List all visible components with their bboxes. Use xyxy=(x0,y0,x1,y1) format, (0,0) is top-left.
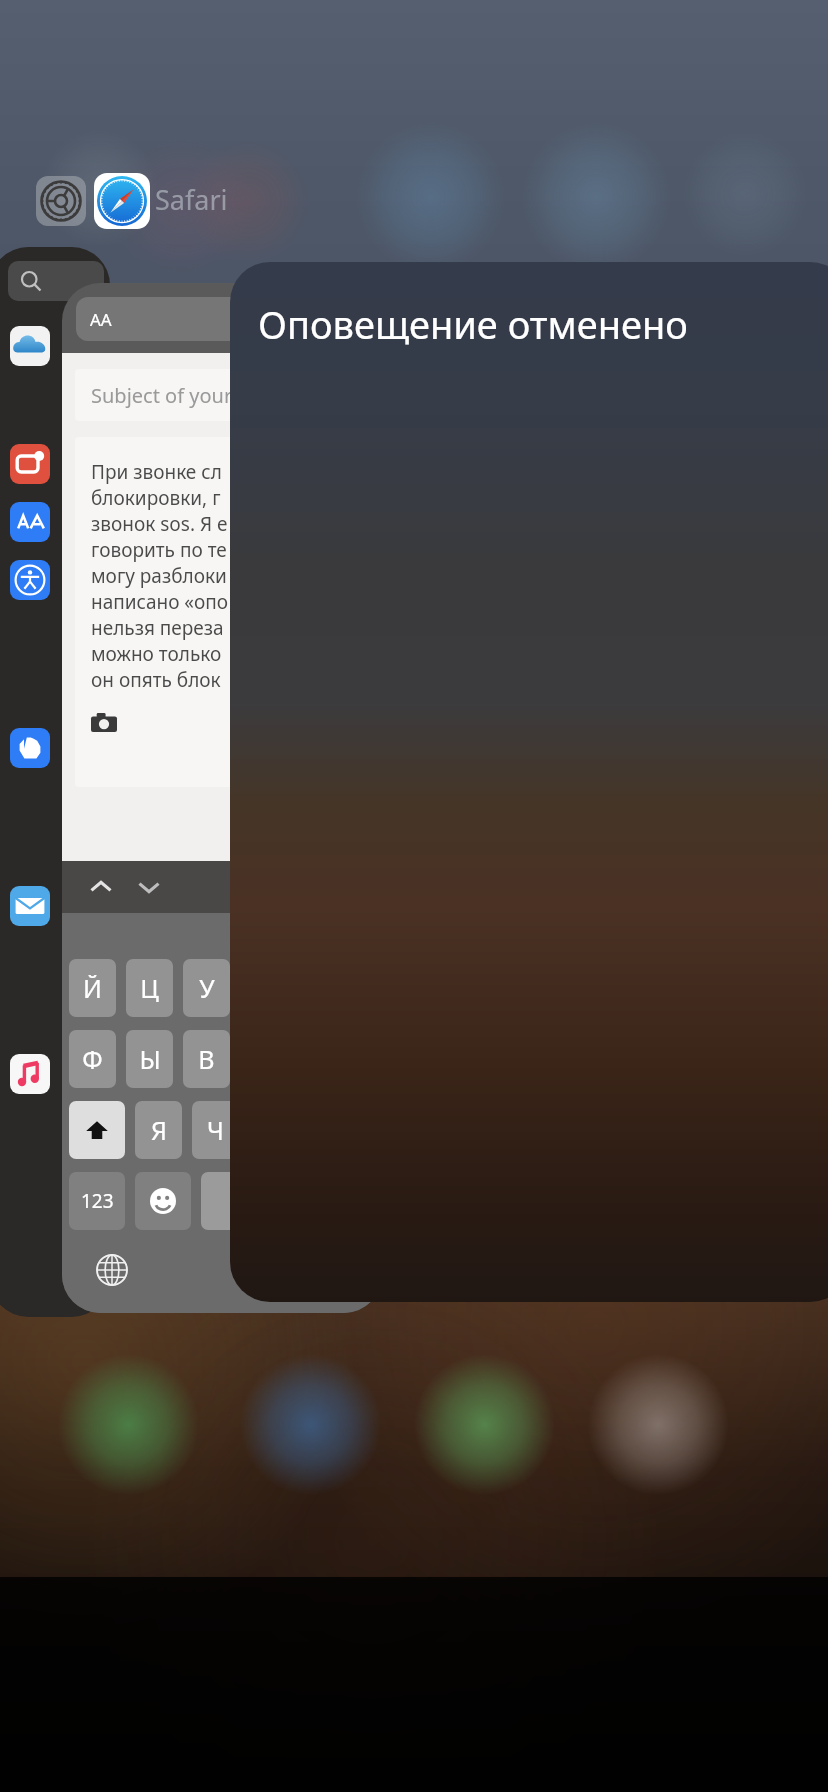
button[interactable] xyxy=(8,261,104,301)
button[interactable]: Emoji xyxy=(135,1172,191,1230)
staticText: Й xyxy=(83,971,102,1005)
button[interactable]: Safari xyxy=(94,173,150,229)
button[interactable]: Я xyxy=(135,1101,182,1159)
button[interactable]: Previous field xyxy=(84,870,118,904)
staticText: Safari xyxy=(155,181,228,218)
staticText: Ы xyxy=(139,1042,161,1076)
button[interactable] xyxy=(0,247,110,1317)
staticText: В xyxy=(198,1042,215,1076)
button[interactable] xyxy=(0,323,110,369)
staticText: При звонке сл xyxy=(91,459,222,485)
button[interactable]: AA xyxy=(62,283,382,1313)
staticText: блокировки, г xyxy=(91,485,221,511)
staticText: звонок sos. Я е xyxy=(91,511,228,537)
button[interactable]: Subject of your xyxy=(75,369,369,421)
button[interactable]: Й xyxy=(69,959,116,1017)
button[interactable] xyxy=(0,1051,110,1097)
staticText: Subject of your xyxy=(91,382,233,409)
staticText: написано «опо xyxy=(91,589,229,615)
button[interactable] xyxy=(0,725,110,771)
button[interactable] xyxy=(0,557,110,603)
button[interactable]: Next field xyxy=(132,870,166,904)
button[interactable]: Ы xyxy=(126,1030,173,1088)
staticText: У xyxy=(199,971,215,1005)
button[interactable]: Ч xyxy=(192,1101,239,1159)
staticText: Ч xyxy=(207,1113,224,1147)
button[interactable]: Оповещение отменено xyxy=(230,262,828,1302)
button[interactable]: Ф xyxy=(69,1030,116,1088)
button[interactable]: Change keyboard language xyxy=(92,1250,132,1290)
button[interactable]: Space xyxy=(201,1172,321,1230)
button[interactable] xyxy=(0,499,110,545)
staticText: dis xyxy=(332,308,354,330)
button[interactable]: В xyxy=(183,1030,230,1088)
staticText: он опять блок xyxy=(91,667,221,693)
button[interactable]: Ц xyxy=(126,959,173,1017)
button[interactable]: При звонке сл xyxy=(75,437,369,787)
staticText: Ц xyxy=(140,971,159,1005)
staticText: Ф xyxy=(82,1042,103,1076)
staticText: Я xyxy=(151,1113,167,1147)
staticText: AA xyxy=(90,308,112,331)
staticText: нельзя переза xyxy=(91,615,224,641)
button[interactable]: 123 xyxy=(69,1172,125,1230)
staticText: могу разблоки xyxy=(91,563,227,589)
button[interactable]: Settings xyxy=(36,176,86,226)
button[interactable]: AA xyxy=(76,297,368,341)
staticText: Оповещение отменено xyxy=(258,298,688,350)
staticText: 123 xyxy=(81,1188,114,1214)
staticText: можно только xyxy=(91,641,222,667)
button[interactable] xyxy=(0,883,110,929)
staticText: говорить по те xyxy=(91,537,227,563)
button[interactable] xyxy=(0,441,110,487)
button[interactable]: Shift xyxy=(69,1101,125,1159)
button[interactable]: У xyxy=(183,959,230,1017)
